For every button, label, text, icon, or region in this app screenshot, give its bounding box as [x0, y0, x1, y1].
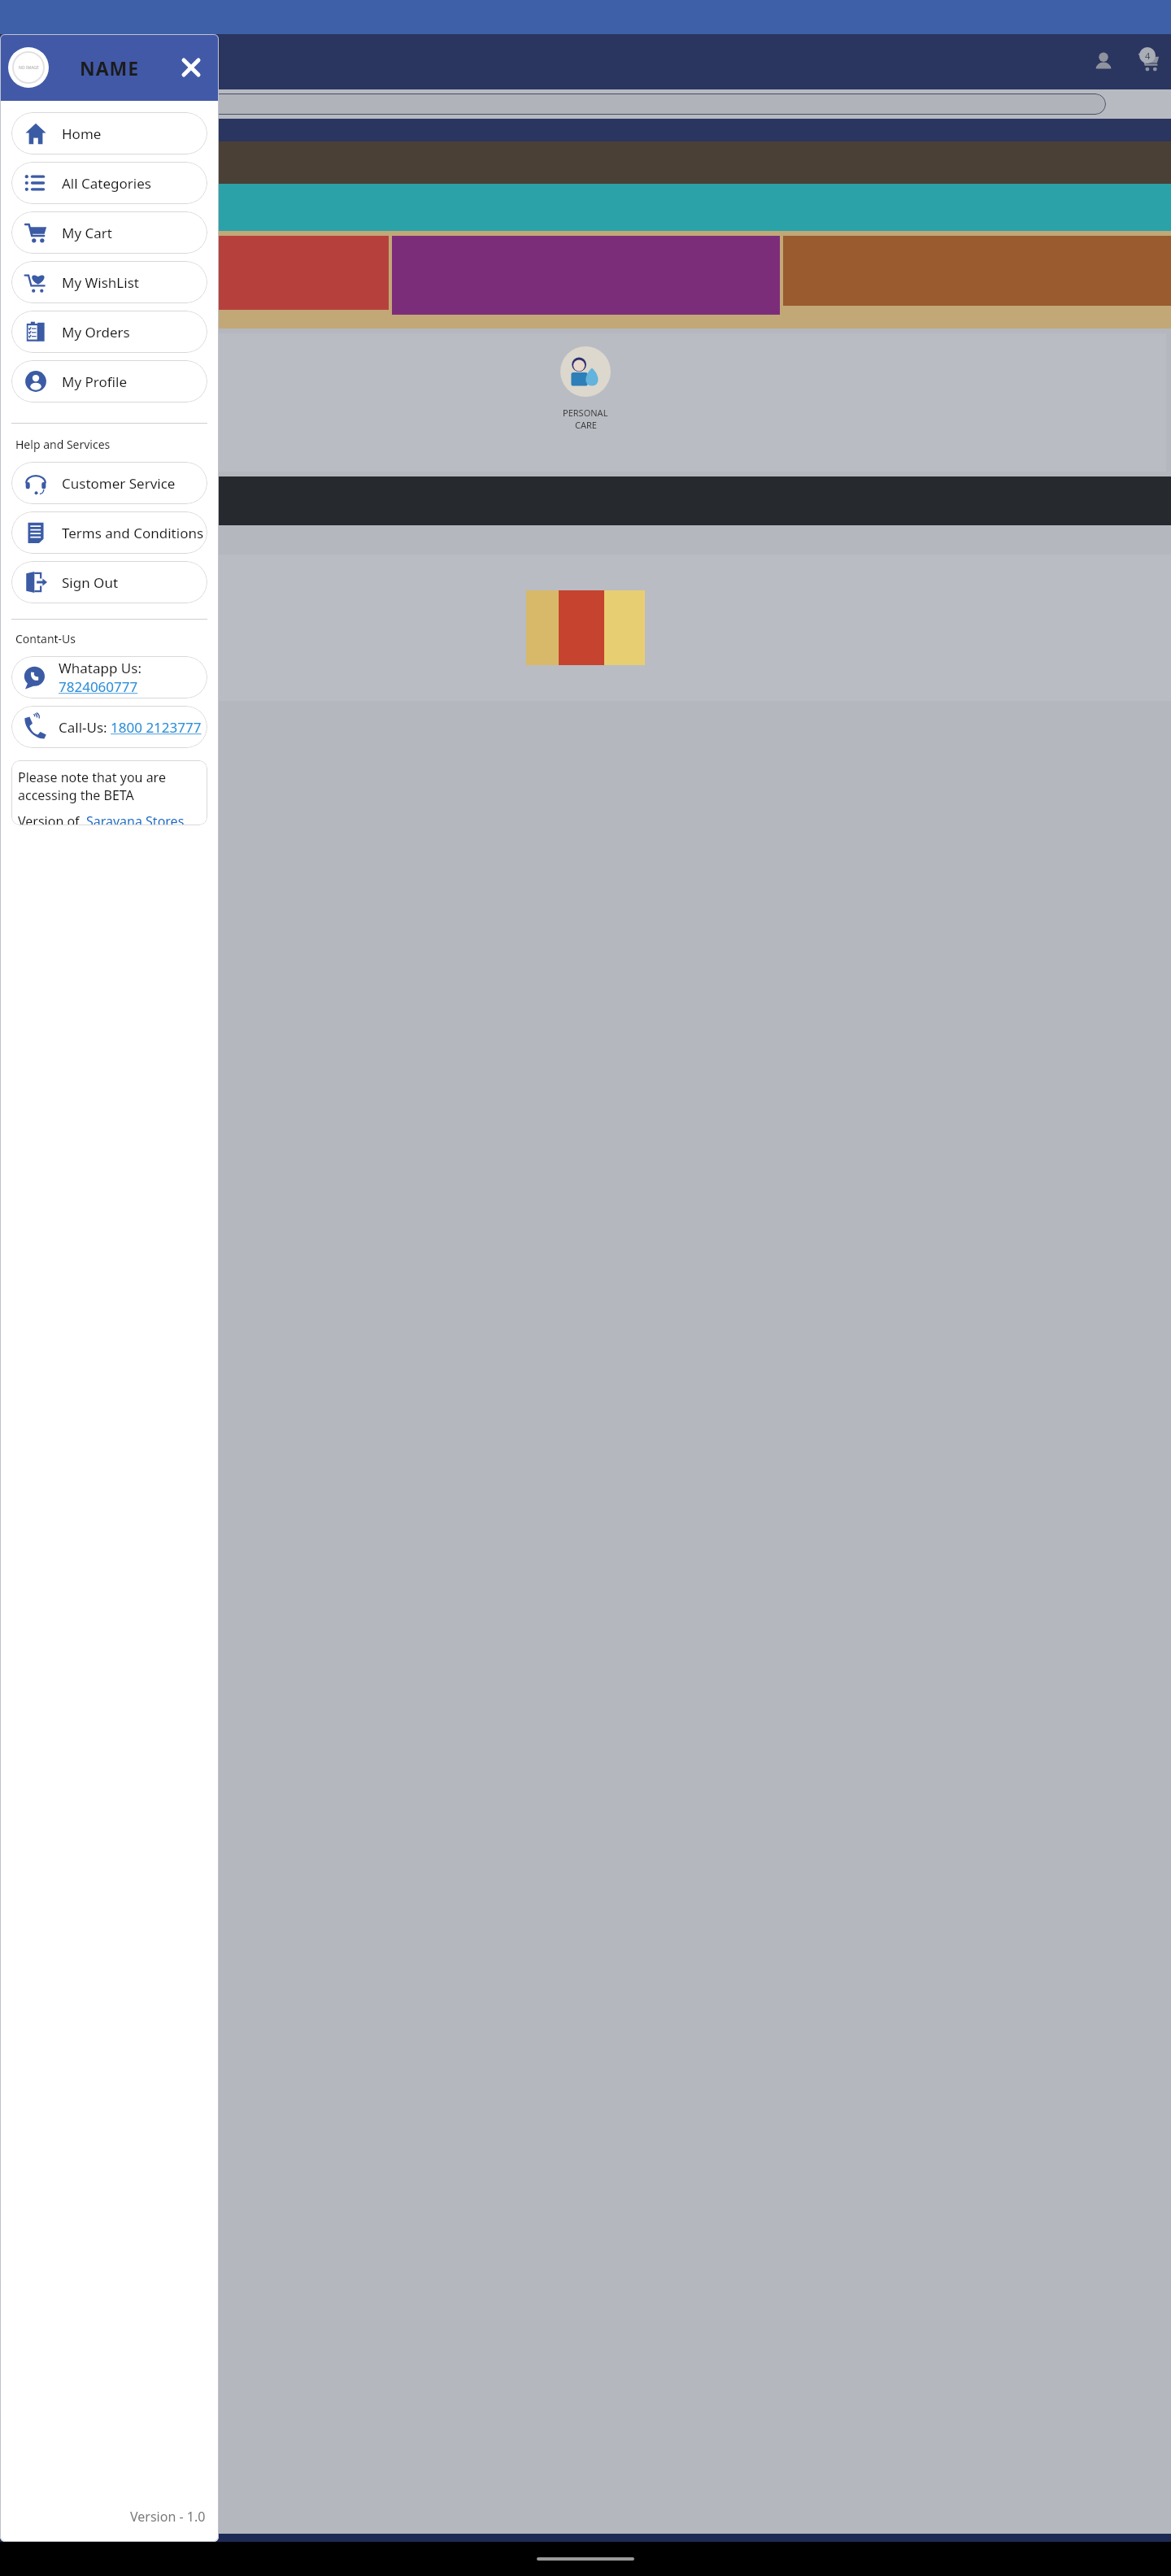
staticText: My Profile	[62, 372, 127, 391]
staticText: Whatapp Us: 7824060777	[59, 659, 207, 696]
button[interactable]: Customer Service	[11, 462, 207, 504]
staticText: Home	[62, 124, 102, 143]
staticText: Please note that you are accessing the B…	[18, 768, 207, 804]
staticText: 4	[1145, 50, 1151, 62]
staticText: My WishList	[62, 273, 139, 292]
staticText: Version of Saravana Stores	[18, 812, 185, 825]
button[interactable]: Whatapp Us: 7824060777	[11, 656, 207, 698]
button[interactable]: My WishList	[11, 261, 207, 303]
staticText: E HOME	[5, 144, 58, 163]
button[interactable]: Close menu	[175, 51, 207, 84]
button[interactable]: Sign Out	[11, 561, 207, 603]
staticText: NO IMAGE	[19, 65, 39, 71]
button[interactable]: My Profile	[11, 360, 207, 402]
button[interactable]: All Categories	[11, 162, 207, 204]
staticText: cks & B	[3, 194, 79, 222]
staticText: My Orders	[62, 323, 130, 342]
staticText: Customer Service	[62, 474, 176, 493]
staticText: NAME	[80, 55, 140, 80]
button[interactable]: My Cart	[11, 211, 207, 254]
button[interactable]: Call-Us: 1800 2123777	[11, 706, 207, 748]
staticText: TA, FLOURS, SOOJI	[5, 677, 96, 691]
staticText: Sign Out	[62, 573, 119, 592]
staticText: Terms and Conditions	[62, 524, 204, 542]
staticText: My Cart	[62, 224, 112, 242]
staticText: CARE	[575, 419, 597, 431]
staticText: Version - 1.0	[130, 2508, 206, 2526]
staticText: DAYS	[3, 489, 46, 513]
button[interactable]: Please note that you are accessing the B…	[11, 760, 207, 825]
button[interactable]: Profile photo	[8, 47, 49, 88]
staticText: Contant-Us	[15, 631, 76, 646]
staticText: Call-Us: 1800 2123777	[59, 718, 202, 737]
button[interactable]: Terms and Conditions	[11, 511, 207, 554]
button[interactable]: Home	[11, 112, 207, 154]
button[interactable]: My Orders	[11, 311, 207, 353]
staticText: LIVERY	[5, 163, 50, 181]
staticText: PERSONAL	[563, 407, 608, 419]
staticText: All Categories	[62, 174, 151, 193]
staticText: Help and Services	[15, 437, 111, 452]
